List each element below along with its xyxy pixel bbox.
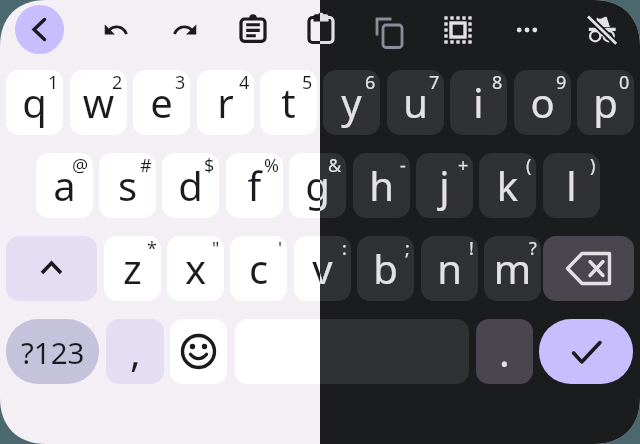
- button[interactable]: Select all: [434, 6, 482, 54]
- button[interactable]: y: [323, 70, 380, 135]
- button[interactable]: z: [104, 236, 161, 301]
- button[interactable]: x: [167, 236, 224, 301]
- button[interactable]: Backspace: [543, 236, 634, 301]
- button[interactable]: i: [450, 70, 507, 135]
- button[interactable]: Copy: [365, 6, 413, 54]
- button[interactable]: Backspace: [543, 236, 634, 301]
- button[interactable]: Redo: [161, 6, 209, 54]
- staticText: ;: [405, 236, 410, 261]
- button[interactable]: Copy: [365, 6, 413, 54]
- button[interactable]: z: [104, 236, 161, 301]
- button[interactable]: f: [226, 153, 283, 218]
- button[interactable]: Back: [15, 5, 64, 54]
- button[interactable]: Period: [476, 319, 533, 384]
- button[interactable]: Symbols: [6, 319, 99, 384]
- button[interactable]: Enter: [539, 319, 633, 384]
- staticText: ): [590, 153, 596, 178]
- button[interactable]: r: [197, 70, 254, 135]
- button[interactable]: More options: [503, 6, 551, 54]
- button[interactable]: Clipboard: [229, 6, 277, 54]
- staticText: @: [72, 153, 89, 178]
- button[interactable]: Emoji: [170, 319, 227, 384]
- button[interactable]: p: [577, 70, 634, 135]
- button[interactable]: c: [230, 236, 287, 301]
- button[interactable]: v: [294, 236, 351, 301]
- button[interactable]: Back: [15, 5, 64, 54]
- staticText: v: [294, 241, 351, 301]
- staticText: l: [543, 158, 600, 218]
- button[interactable]: a: [36, 153, 93, 218]
- button[interactable]: q: [6, 70, 63, 135]
- button[interactable]: b: [357, 236, 414, 301]
- button[interactable]: r: [197, 70, 254, 135]
- button[interactable]: Undo: [92, 6, 140, 54]
- staticText: #: [140, 153, 152, 178]
- button[interactable]: t: [260, 70, 317, 135]
- button[interactable]: a: [36, 153, 93, 218]
- button[interactable]: Symbols: [6, 319, 99, 384]
- button[interactable]: g: [289, 153, 346, 218]
- button[interactable]: y: [323, 70, 380, 135]
- button[interactable]: m: [484, 236, 541, 301]
- button[interactable]: o: [514, 70, 571, 135]
- staticText: u: [387, 75, 444, 135]
- staticText: .: [499, 324, 510, 378]
- button[interactable]: k: [479, 153, 536, 218]
- button[interactable]: Paste: [297, 6, 345, 54]
- button[interactable]: Period: [476, 319, 533, 384]
- button[interactable]: o: [514, 70, 571, 135]
- button[interactable]: j: [416, 153, 473, 218]
- button[interactable]: Incognito off: [578, 6, 626, 54]
- button[interactable]: Shift: [6, 236, 97, 301]
- button[interactable]: k: [479, 153, 536, 218]
- button[interactable]: c: [230, 236, 287, 301]
- button[interactable]: w: [70, 70, 127, 135]
- button[interactable]: e: [133, 70, 190, 135]
- button[interactable]: Select all: [434, 6, 482, 54]
- button[interactable]: l: [543, 153, 600, 218]
- button[interactable]: u: [387, 70, 444, 135]
- button[interactable]: Incognito off: [578, 6, 626, 54]
- button[interactable]: u: [387, 70, 444, 135]
- staticText: %: [264, 153, 279, 178]
- button[interactable]: More options: [503, 6, 551, 54]
- button[interactable]: Space: [235, 319, 469, 384]
- button[interactable]: g: [289, 153, 346, 218]
- button[interactable]: Redo: [161, 6, 209, 54]
- button[interactable]: j: [416, 153, 473, 218]
- button[interactable]: b: [357, 236, 414, 301]
- button[interactable]: l: [543, 153, 600, 218]
- button[interactable]: d: [162, 153, 219, 218]
- button[interactable]: n: [421, 236, 478, 301]
- button[interactable]: h: [353, 153, 410, 218]
- staticText: m: [484, 241, 541, 301]
- button[interactable]: s: [99, 153, 156, 218]
- button[interactable]: s: [99, 153, 156, 218]
- button[interactable]: w: [70, 70, 127, 135]
- button[interactable]: t: [260, 70, 317, 135]
- button[interactable]: Clipboard: [229, 6, 277, 54]
- button[interactable]: Shift: [6, 236, 97, 301]
- button[interactable]: Enter: [539, 319, 633, 384]
- button[interactable]: Comma: [106, 319, 164, 384]
- button[interactable]: Space: [235, 319, 469, 384]
- button[interactable]: v: [294, 236, 351, 301]
- staticText: i: [450, 75, 507, 135]
- button[interactable]: e: [133, 70, 190, 135]
- button[interactable]: m: [484, 236, 541, 301]
- button[interactable]: d: [162, 153, 219, 218]
- button[interactable]: p: [577, 70, 634, 135]
- button[interactable]: i: [450, 70, 507, 135]
- staticText: 3: [175, 70, 186, 95]
- button[interactable]: Emoji: [170, 319, 227, 384]
- button[interactable]: q: [6, 70, 63, 135]
- button[interactable]: f: [226, 153, 283, 218]
- button[interactable]: Undo: [92, 6, 140, 54]
- button[interactable]: Paste: [297, 6, 345, 54]
- button[interactable]: x: [167, 236, 224, 301]
- button[interactable]: Comma: [106, 319, 164, 384]
- staticText: 2: [112, 70, 123, 95]
- button[interactable]: h: [353, 153, 410, 218]
- staticText: y: [323, 75, 380, 135]
- button[interactable]: n: [421, 236, 478, 301]
